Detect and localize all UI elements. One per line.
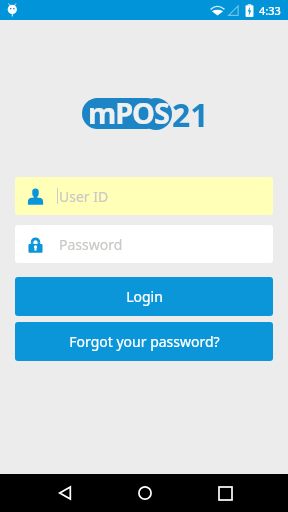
staticText: User ID (59, 187, 109, 206)
button[interactable]: Back (35, 474, 95, 512)
staticText: Password (59, 235, 123, 254)
button[interactable]: Login (15, 277, 273, 316)
staticText: Login (126, 287, 163, 306)
staticText: mPOS (88, 93, 169, 132)
staticText: 21 (172, 93, 209, 135)
staticText: 4:33 (259, 3, 281, 18)
button[interactable]: Recent apps (195, 474, 255, 512)
button[interactable]: Password (15, 225, 273, 263)
button[interactable]: User ID (15, 177, 273, 215)
button[interactable]: Forgot your password? (15, 322, 273, 361)
staticText: Forgot your password? (69, 332, 220, 351)
button[interactable]: Home (115, 474, 175, 512)
